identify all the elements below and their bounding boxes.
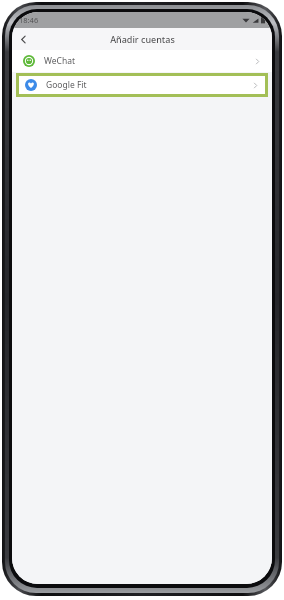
- staticText: Añadir cuentas: [110, 33, 175, 45]
- button[interactable]: Google Fit: [18, 75, 266, 95]
- staticText: WeChat: [44, 55, 75, 67]
- staticText: Google Fit: [46, 79, 87, 91]
- button[interactable]: WeChat: [12, 50, 272, 72]
- button[interactable]: Back: [12, 28, 34, 50]
- staticText: 18:46: [19, 15, 39, 25]
